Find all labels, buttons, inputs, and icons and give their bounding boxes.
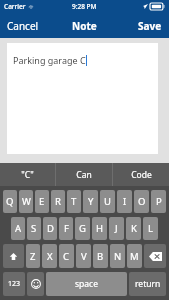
- button[interactable]: Q: [3, 190, 17, 213]
- staticText: Can: [76, 169, 92, 181]
- button[interactable]: U: [100, 190, 115, 213]
- staticText: "C": [21, 169, 34, 181]
- button[interactable]: X: [42, 244, 57, 268]
- staticText: U: [104, 195, 111, 208]
- button[interactable]: M: [127, 244, 142, 268]
- staticText: D: [47, 222, 54, 235]
- staticText: F: [64, 222, 69, 235]
- button[interactable]: C: [59, 244, 74, 268]
- button[interactable]: L: [143, 217, 158, 240]
- button[interactable]: Y: [83, 190, 98, 213]
- staticText: N: [114, 250, 122, 263]
- staticText: return: [135, 278, 161, 290]
- staticText: Q: [6, 195, 14, 208]
- staticText: E: [39, 195, 45, 208]
- staticText: O: [138, 195, 146, 208]
- button[interactable]: V: [76, 244, 91, 268]
- staticText: R: [55, 195, 61, 208]
- button[interactable]: Can: [56, 163, 112, 186]
- staticText: X: [47, 250, 53, 263]
- staticText: V: [81, 250, 87, 263]
- staticText: Cancel: [7, 19, 39, 33]
- button[interactable]: T: [67, 190, 81, 213]
- staticText: C: [63, 250, 70, 263]
- button[interactable]: H: [92, 217, 107, 240]
- button[interactable]: D: [43, 217, 57, 240]
- staticText: 9:28 PM: [72, 2, 97, 11]
- button[interactable]: N: [110, 244, 125, 268]
- staticText: Code: [131, 169, 152, 181]
- button[interactable]: Cancel: [0, 13, 46, 38]
- button[interactable]: S: [27, 217, 41, 240]
- staticText: J: [115, 222, 118, 235]
- staticText: 123: [8, 279, 21, 289]
- staticText: I: [123, 195, 127, 208]
- staticText: L: [148, 222, 153, 235]
- staticText: B: [97, 250, 104, 263]
- staticText: P: [156, 195, 162, 208]
- button[interactable]: "C": [0, 163, 55, 186]
- button[interactable]: Parking garage C: [7, 43, 158, 154]
- staticText: Note: [72, 19, 97, 33]
- staticText: space: [75, 278, 98, 290]
- staticText: W: [22, 195, 31, 208]
- button[interactable]: W: [19, 190, 33, 213]
- staticText: H: [96, 222, 104, 235]
- staticText: Parking garage C: [13, 54, 86, 66]
- staticText: K: [131, 222, 137, 235]
- staticText: Z: [30, 250, 36, 263]
- button[interactable]: space: [46, 272, 127, 296]
- button[interactable]: E: [35, 190, 49, 213]
- button[interactable]: Shift: [3, 244, 24, 268]
- staticText: M: [130, 250, 139, 263]
- button[interactable]: Save: [131, 13, 169, 38]
- button[interactable]: Code: [113, 163, 169, 186]
- staticText: Y: [88, 195, 94, 208]
- button[interactable]: Emoji keyboard: [27, 272, 44, 296]
- button[interactable]: Z: [26, 244, 40, 268]
- staticText: A: [15, 222, 22, 235]
- button[interactable]: R: [51, 190, 65, 213]
- staticText: Save: [138, 19, 162, 33]
- button[interactable]: O: [134, 190, 149, 213]
- button[interactable]: A: [11, 217, 25, 240]
- button[interactable]: B: [93, 244, 108, 268]
- button[interactable]: G: [75, 217, 90, 240]
- button[interactable]: P: [151, 190, 166, 213]
- button[interactable]: Backspace: [144, 244, 166, 268]
- button[interactable]: K: [126, 217, 141, 240]
- button[interactable]: J: [109, 217, 124, 240]
- staticText: G: [79, 222, 86, 235]
- button[interactable]: 123: [3, 272, 25, 296]
- button[interactable]: F: [59, 217, 73, 240]
- staticText: S: [31, 222, 37, 235]
- button[interactable]: return: [129, 272, 166, 296]
- button[interactable]: I: [117, 190, 132, 213]
- staticText: Carrier: [4, 2, 26, 11]
- staticText: T: [71, 195, 77, 208]
